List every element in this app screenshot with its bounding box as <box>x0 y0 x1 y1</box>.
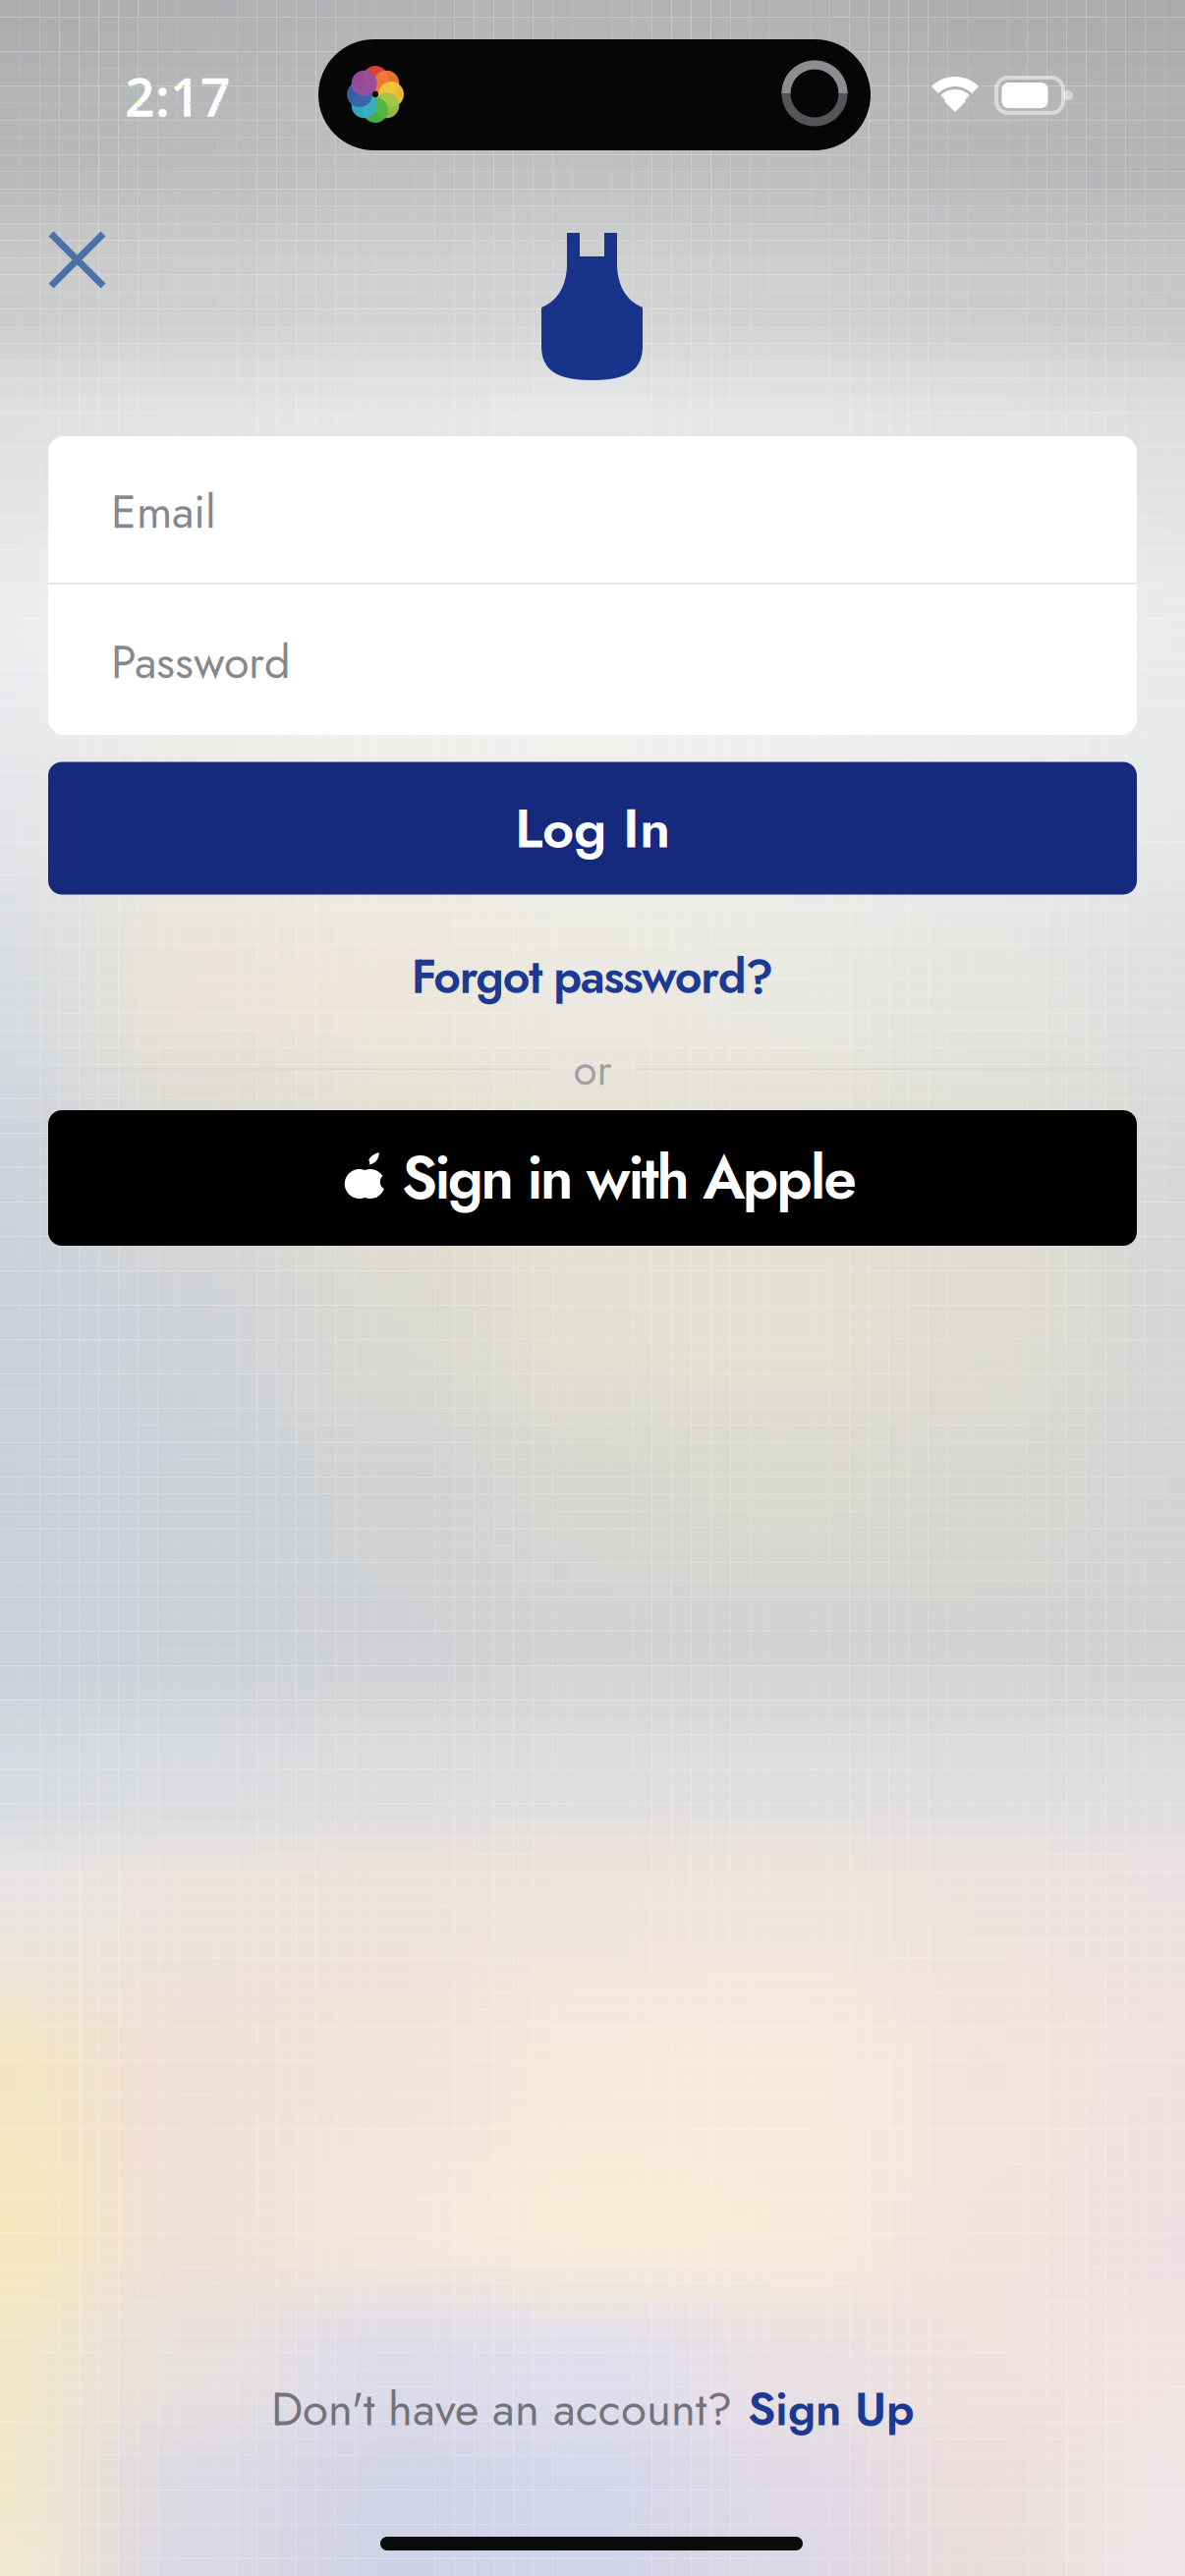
button[interactable]: Sign Up <box>748 2375 914 2443</box>
staticText: Password <box>111 629 291 695</box>
staticText: Log In <box>515 788 670 868</box>
staticText: 2:17 <box>125 62 231 131</box>
button[interactable]: Close <box>48 230 107 289</box>
button[interactable]: Password <box>48 588 1137 737</box>
button[interactable]: Forgot password? <box>412 942 774 1011</box>
staticText: Sign Up <box>748 2375 914 2443</box>
staticText: Forgot password? <box>412 942 774 1011</box>
staticText: Email <box>111 479 216 545</box>
staticText: Don't have an account? <box>271 2375 732 2443</box>
button[interactable]: Log In <box>48 762 1137 895</box>
button[interactable]: Email <box>48 438 1137 586</box>
staticText: or <box>573 1039 612 1101</box>
staticText: Sign in with Apple <box>402 1135 857 1221</box>
button[interactable]: Sign in with Apple <box>48 1110 1137 1246</box>
